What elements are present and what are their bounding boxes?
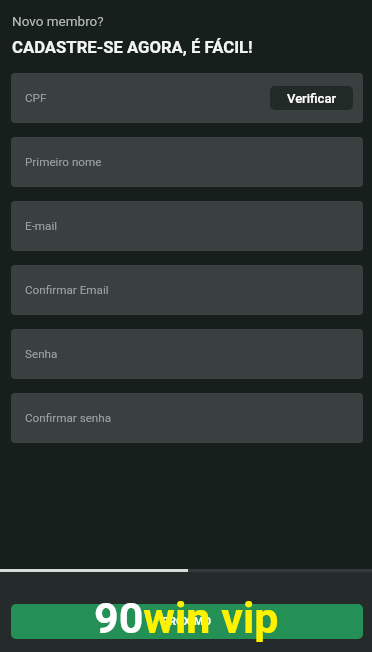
staticText: CADASTRE-SE AGORA, É FÁCIL! <box>12 38 253 58</box>
button[interactable]: Primeiro nome <box>11 137 363 187</box>
staticText: Confirmar senha <box>25 411 112 425</box>
staticText: Novo membro? <box>12 13 104 29</box>
button[interactable]: Verificar <box>270 86 353 110</box>
staticText: Confirmar Email <box>25 283 109 297</box>
button[interactable]: Confirmar Email <box>11 265 363 315</box>
button[interactable]: CPF <box>11 73 363 123</box>
staticText: 90win vip <box>94 593 279 643</box>
staticText: Senha <box>25 347 58 361</box>
button[interactable]: Senha <box>11 329 363 379</box>
staticText: Verificar <box>287 91 336 106</box>
button[interactable]: Confirmar senha <box>11 393 363 443</box>
button[interactable]: PRÓXIMO <box>11 604 363 639</box>
staticText: Primeiro nome <box>25 155 102 169</box>
staticText: CPF <box>25 91 47 105</box>
staticText: PRÓXIMO <box>162 615 212 628</box>
staticText: E-mail <box>25 219 58 233</box>
button[interactable]: E-mail <box>11 201 363 251</box>
